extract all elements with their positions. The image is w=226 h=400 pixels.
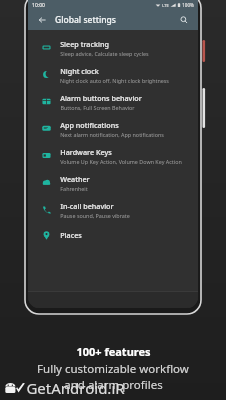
staticText: Hardware Keys <box>60 147 112 157</box>
staticText: Global settings <box>55 14 116 26</box>
button[interactable]: Sleep tracking <box>28 34 198 61</box>
staticText: Night clock auto off, Night clock bright… <box>60 77 169 84</box>
staticText: Fully customizable workflow <box>37 361 189 377</box>
staticText: Pause sound, Pause vibrate <box>60 212 130 219</box>
button[interactable]: Back <box>35 13 49 27</box>
button[interactable]: Alarm buttons behavior <box>28 88 198 115</box>
button[interactable]: Places <box>28 223 198 247</box>
staticText: 100% <box>182 2 194 8</box>
staticText: LTE <box>162 3 169 8</box>
staticText: Sleep tracking <box>60 39 109 49</box>
button[interactable]: Hardware Keys <box>28 142 198 169</box>
button[interactable]: Search <box>177 13 191 27</box>
staticText: Sleep advice, Calculate sleep cycles <box>60 50 149 57</box>
staticText: Volume Up Key Action, Volume Down Key Ac… <box>60 158 182 165</box>
staticText: Buttons, Full Screen Behavior <box>60 104 135 111</box>
staticText: Alarm buttons behavior <box>60 93 142 103</box>
button[interactable]: Night clock <box>28 61 198 88</box>
button[interactable]: Weather <box>28 169 198 196</box>
staticText: Weather <box>60 174 90 184</box>
staticText: In-call behavior <box>60 201 114 211</box>
staticText: App notifications <box>60 120 119 130</box>
staticText: Fahrenheit <box>60 185 88 192</box>
staticText: and alarm profiles <box>64 377 163 393</box>
button[interactable]: In-call behavior <box>28 196 198 223</box>
button[interactable]: App notifications <box>28 115 198 142</box>
staticText: Places <box>60 230 82 240</box>
staticText: 10:00 <box>32 2 45 9</box>
staticText: Next alarm notification, App notificatio… <box>60 131 164 138</box>
staticText: 100+ features <box>76 344 151 359</box>
staticText: Night clock <box>60 66 99 76</box>
staticText: GetAndroid.iR <box>26 378 125 398</box>
